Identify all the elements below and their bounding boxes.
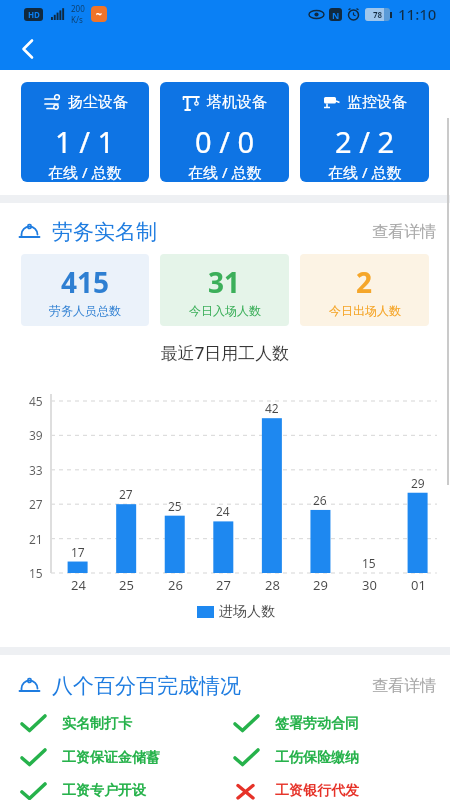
- button[interactable]: 工资专户开设: [20, 782, 225, 800]
- button[interactable]: 实名制打卡: [20, 714, 225, 733]
- button[interactable]: 签署劳动合同: [233, 714, 450, 733]
- button[interactable]: 工资保证金储蓄: [20, 748, 225, 767]
- staticText: 25: [168, 498, 182, 514]
- staticText: 24: [71, 576, 86, 594]
- staticText: 2: [356, 263, 373, 301]
- staticText: 在线 / 总数: [328, 162, 402, 182]
- staticText: 工资银行代发: [275, 782, 359, 800]
- staticText: N: [332, 9, 340, 21]
- staticText: 签署劳动合同: [275, 715, 359, 733]
- staticText: 45: [29, 393, 43, 409]
- button[interactable]: 工伤保险缴纳: [233, 748, 450, 767]
- button[interactable]: 2: [300, 254, 429, 326]
- staticText: 工资专户开设: [62, 782, 146, 800]
- staticText: 八个百分百完成情况: [52, 673, 241, 699]
- button[interactable]: 查看详情: [372, 222, 436, 242]
- staticText: 31: [208, 263, 241, 301]
- staticText: 1 / 1: [55, 122, 115, 161]
- staticText: HD: [28, 9, 40, 20]
- staticText: 25: [119, 576, 134, 594]
- staticText: 42: [265, 400, 279, 416]
- staticText: 415: [61, 263, 110, 301]
- staticText: 29: [313, 576, 328, 594]
- staticText: 实名制打卡: [62, 715, 132, 733]
- staticText: 劳务人员总数: [49, 303, 121, 318]
- button[interactable]: 查看详情: [372, 676, 436, 696]
- staticText: 今日入场人数: [189, 303, 261, 318]
- staticText: K/s: [71, 14, 83, 25]
- staticText: 27: [216, 576, 231, 594]
- staticText: 在线 / 总数: [48, 162, 122, 182]
- staticText: 39: [29, 427, 43, 443]
- staticText: 劳务实名制: [52, 219, 157, 245]
- staticText: 0 / 0: [195, 122, 255, 161]
- staticText: 今日出场人数: [329, 303, 401, 318]
- staticText: 26: [313, 492, 327, 508]
- staticText: 30: [362, 576, 377, 594]
- staticText: 78: [373, 9, 383, 20]
- button[interactable]: 扬尘设备: [21, 82, 149, 182]
- staticText: 28: [265, 576, 280, 594]
- button[interactable]: 31: [160, 254, 289, 326]
- button[interactable]: 监控设备: [300, 82, 429, 182]
- button[interactable]: 工资银行代发: [233, 782, 450, 800]
- staticText: 在线 / 总数: [188, 162, 262, 182]
- staticText: 27: [29, 496, 43, 512]
- staticText: ~: [96, 7, 102, 21]
- staticText: 17: [71, 544, 85, 560]
- staticText: 01: [411, 576, 426, 594]
- staticText: 15: [29, 565, 43, 581]
- staticText: 工资保证金储蓄: [62, 749, 160, 767]
- staticText: 200: [71, 3, 85, 14]
- staticText: 扬尘设备: [68, 93, 128, 112]
- staticText: 24: [216, 503, 230, 519]
- staticText: 进场人数: [219, 603, 275, 621]
- staticText: 工伤保险缴纳: [275, 749, 359, 767]
- staticText: 27: [119, 486, 133, 502]
- staticText: 2 / 2: [335, 122, 395, 161]
- button[interactable]: 塔机设备: [160, 82, 289, 182]
- staticText: 15: [362, 555, 376, 571]
- staticText: 查看详情: [372, 222, 436, 242]
- staticText: 最近7日用工人数: [0, 341, 450, 364]
- staticText: 33: [29, 462, 43, 478]
- button[interactable]: [10, 31, 46, 67]
- staticText: 21: [29, 531, 43, 547]
- staticText: 塔机设备: [207, 93, 267, 112]
- button[interactable]: 415: [21, 254, 149, 326]
- staticText: 29: [411, 475, 425, 491]
- staticText: 查看详情: [372, 676, 436, 696]
- staticText: 26: [168, 576, 183, 594]
- staticText: 11:10: [398, 4, 437, 24]
- staticText: 监控设备: [347, 93, 407, 112]
